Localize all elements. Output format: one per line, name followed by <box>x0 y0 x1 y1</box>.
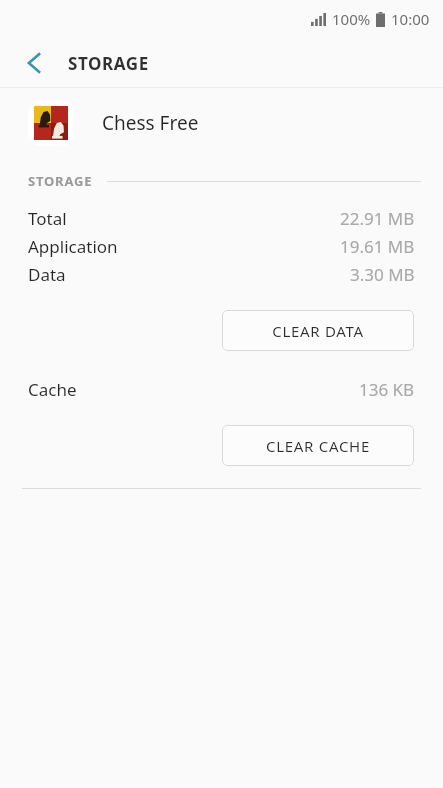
staticText: Data <box>28 263 66 286</box>
staticText: 3.30 MB <box>350 263 415 286</box>
staticText: STORAGE <box>28 172 93 190</box>
staticText: STORAGE <box>68 52 149 75</box>
button[interactable]: CLEAR CACHE <box>222 425 414 466</box>
staticText: 100% <box>332 9 371 29</box>
staticText: 19.61 MB <box>340 235 415 258</box>
button[interactable]: Back <box>14 43 54 83</box>
staticText: 22.91 MB <box>340 207 415 230</box>
staticText: 10:00 <box>391 9 430 29</box>
staticText: Chess Free <box>102 110 199 136</box>
staticText: 136 KB <box>359 378 415 401</box>
staticText: CLEAR CACHE <box>266 436 370 456</box>
staticText: Cache <box>28 378 77 401</box>
staticText: Application <box>28 235 118 258</box>
button[interactable]: CLEAR DATA <box>222 310 414 351</box>
staticText: CLEAR DATA <box>272 321 364 341</box>
staticText: Total <box>28 207 67 230</box>
